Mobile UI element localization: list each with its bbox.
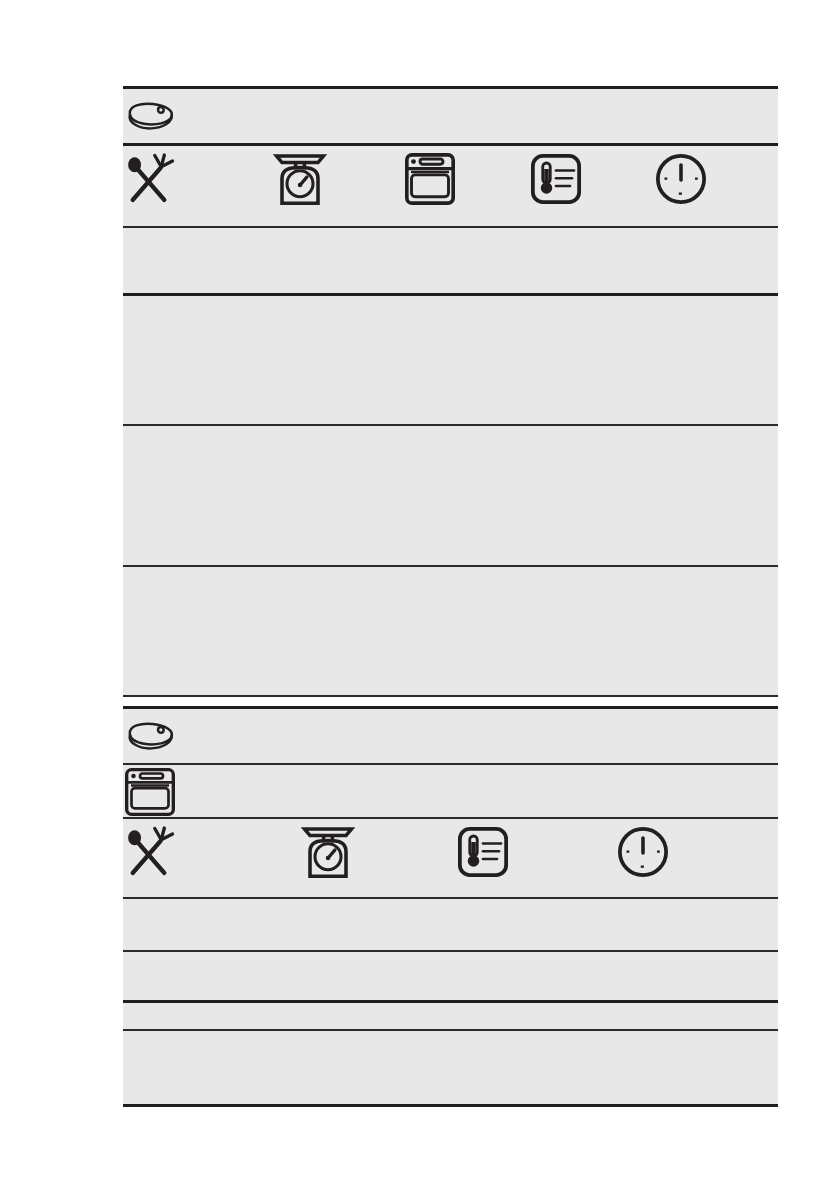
button[interactable]: Time — [618, 827, 668, 877]
button[interactable]: Meat — [127, 720, 174, 753]
button[interactable]: Weight — [303, 824, 353, 879]
button[interactable]: Oven function — [123, 765, 778, 817]
button[interactable]: Meat — [123, 709, 778, 763]
button[interactable]: Core temperature — [531, 154, 581, 204]
button[interactable]: Dish — [125, 154, 173, 204]
button[interactable]: Weight — [275, 151, 325, 206]
button[interactable]: Meat — [127, 100, 174, 133]
button[interactable]: Meat — [123, 89, 778, 143]
button[interactable]: Dish — [123, 146, 778, 226]
button[interactable]: Oven function — [125, 768, 175, 816]
button[interactable]: Core temperature — [458, 827, 508, 877]
button[interactable]: Oven function — [405, 153, 455, 205]
button[interactable]: Dish — [125, 827, 173, 877]
button[interactable]: Dish — [123, 819, 778, 897]
button[interactable]: Time — [656, 154, 706, 204]
